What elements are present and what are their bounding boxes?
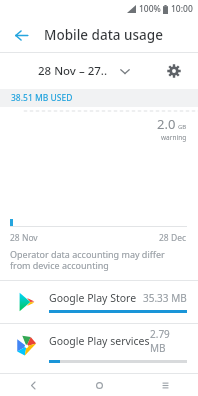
staticText: 10:00 (171, 3, 193, 15)
button[interactable]: Google Play Store (0, 281, 198, 323)
staticText: Mobile data usage (44, 26, 163, 44)
staticText: 38.51 MB USED (11, 92, 73, 104)
staticText: 2.79 MB (150, 327, 187, 355)
button[interactable]: 28 Nov – 27.. (20, 63, 160, 79)
staticText: 28 Nov – 27.. (38, 63, 108, 79)
staticText: Google Play Store (49, 291, 137, 305)
staticText: 2.0 (157, 115, 176, 133)
staticText: 28 Dec (159, 232, 187, 244)
staticText: 35.33 MB (143, 291, 187, 305)
button[interactable]: Google Play services (0, 324, 198, 366)
button[interactable]: Home (66, 374, 132, 396)
staticText: GB (178, 123, 187, 131)
button[interactable]: Recent apps (132, 374, 198, 396)
button[interactable]: Back (6, 20, 36, 50)
staticText: Google Play services (49, 334, 150, 348)
staticText: 28 Nov (10, 232, 38, 244)
staticText: warning (161, 133, 187, 142)
staticText: 100% (139, 3, 161, 15)
button[interactable]: Settings (160, 57, 188, 85)
staticText: Operator data accounting may differ from… (10, 248, 184, 272)
button[interactable]: Back (0, 374, 66, 396)
